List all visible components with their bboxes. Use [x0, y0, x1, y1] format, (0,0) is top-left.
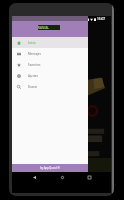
staticText: Mensajes — [28, 52, 41, 56]
button[interactable]: Ajustes — [12, 70, 88, 81]
staticText: Favoritos — [28, 63, 41, 67]
button[interactable]: Back — [29, 172, 39, 182]
staticText: MANUAL USUARIO — [38, 26, 60, 30]
button[interactable]: Inicio — [12, 37, 88, 48]
button[interactable]: Favoritos — [12, 59, 88, 70]
staticText: Inicio — [28, 41, 36, 45]
staticText: by AppQuest ® — [40, 166, 60, 170]
staticText: Ajustes — [28, 74, 38, 78]
staticText: Buscar — [28, 85, 38, 89]
button[interactable]: Home — [57, 172, 67, 182]
button[interactable]: Buscar — [12, 81, 88, 92]
staticText: 16:07 — [97, 17, 106, 21]
button[interactable]: Recent apps — [84, 172, 94, 182]
button[interactable]: Mensajes — [12, 48, 88, 59]
